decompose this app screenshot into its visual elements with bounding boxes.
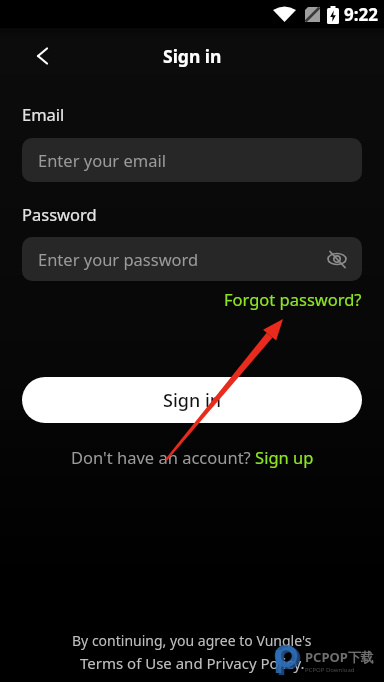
staticText: Sign in	[163, 388, 222, 413]
staticText: Email	[22, 103, 65, 125]
button[interactable]: Forgot password?	[224, 288, 362, 310]
button[interactable]	[28, 42, 56, 70]
button[interactable]: Don't have an account? Sign up	[71, 446, 314, 468]
staticText: Enter your email	[38, 149, 166, 171]
staticText: PCPOP Download	[305, 666, 355, 674]
button[interactable]: Sign in	[22, 377, 362, 423]
staticText: Don't have an account? Sign up	[71, 446, 314, 468]
button[interactable]: Enter your password	[22, 237, 362, 281]
staticText: Password	[22, 203, 97, 225]
staticText: Forgot password?	[224, 288, 362, 310]
staticText: Sign in	[163, 44, 222, 68]
staticText: 9:22	[344, 3, 378, 26]
button[interactable]: Enter your email	[22, 138, 362, 182]
staticText: Enter your password	[38, 248, 199, 270]
staticText: PCPOP下载	[305, 648, 374, 666]
staticText: Terms of Use and Privacy Policy.	[80, 653, 305, 673]
staticText: By continuing, you agree to Vungle's	[72, 631, 312, 650]
